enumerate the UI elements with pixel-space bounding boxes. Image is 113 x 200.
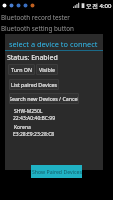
button[interactable]: List paired Devices xyxy=(9,79,59,90)
button[interactable]: Visible xyxy=(36,64,58,75)
staticText: SHW-M250L xyxy=(14,108,43,115)
staticText: Korena xyxy=(14,124,31,131)
staticText: Show Paired Devices xyxy=(32,168,82,175)
staticText: Turn ON xyxy=(11,66,32,73)
staticText: List paired Devices xyxy=(11,81,58,88)
button[interactable]: Search new Devices / Cancel xyxy=(9,93,79,104)
staticText: 22:43:A0:40:BC:99 xyxy=(13,115,56,122)
staticText: Bluetooth record tester xyxy=(1,13,70,22)
button[interactable]: Turn ON xyxy=(8,64,35,75)
staticText: select a device to connect xyxy=(9,39,98,49)
staticText: Visible xyxy=(39,66,56,73)
staticText: 오전 4:00 xyxy=(86,2,112,10)
staticText: E3:28:E9:23:28:C8 xyxy=(13,131,55,138)
staticText: Status: Enabled xyxy=(7,53,58,63)
staticText: Search new Devices / Cancel xyxy=(9,95,79,102)
button[interactable]: Show Paired Devices xyxy=(31,165,82,178)
staticText: Bluetooth setting button xyxy=(1,24,75,33)
